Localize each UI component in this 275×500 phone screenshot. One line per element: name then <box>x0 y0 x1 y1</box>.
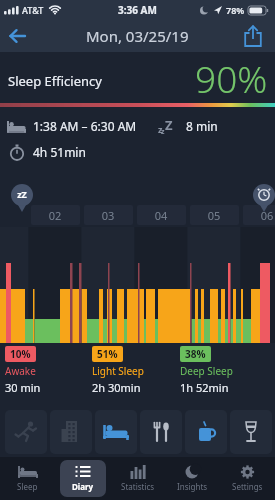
button[interactable] <box>140 410 182 454</box>
button[interactable]: Diary <box>55 457 110 500</box>
staticText: AT&T <box>22 4 44 16</box>
staticText: 1h 52min <box>180 380 229 395</box>
staticText: 30 min <box>5 380 41 395</box>
staticText: 02 <box>40 208 70 223</box>
staticText: z <box>158 123 163 135</box>
staticText: Z <box>165 116 173 134</box>
staticText: Sleep Efficiency <box>8 72 102 90</box>
button[interactable] <box>230 410 272 454</box>
staticText: 3:36 AM <box>118 3 157 17</box>
staticText: 05 <box>199 208 229 223</box>
staticText: Awake <box>5 364 36 378</box>
button[interactable] <box>239 20 267 52</box>
button[interactable] <box>50 410 92 454</box>
button[interactable]: Statistics <box>110 457 165 500</box>
button[interactable] <box>185 410 227 454</box>
button[interactable]: Insights <box>165 457 220 500</box>
staticText: 38% <box>185 347 206 361</box>
staticText: 90% <box>195 53 268 103</box>
staticText: 4h 51min <box>33 144 86 160</box>
staticText: Deep Sleep <box>180 364 233 378</box>
staticText: 04 <box>146 208 176 223</box>
staticText: 03 <box>93 208 123 223</box>
staticText: Diary <box>72 481 94 492</box>
staticText: Statistics <box>121 481 155 492</box>
staticText: 8 min <box>186 118 218 134</box>
staticText: Light Sleep <box>92 364 144 378</box>
staticText: z <box>161 127 165 137</box>
staticText: 1:38 AM – 6:30 AM <box>33 118 137 134</box>
staticText: 06 <box>252 208 275 223</box>
staticText: 51% <box>97 347 118 361</box>
button[interactable] <box>5 410 47 454</box>
staticText: Settings <box>232 481 263 492</box>
button[interactable]: Sleep <box>0 457 55 500</box>
button[interactable]: Settings <box>220 457 275 500</box>
staticText: Sleep <box>17 481 38 492</box>
staticText: zZ <box>13 188 31 200</box>
staticText: Mon, 03/25/19 <box>86 26 189 46</box>
button[interactable] <box>95 410 137 454</box>
staticText: 2h 30min <box>92 380 141 395</box>
button[interactable] <box>0 20 34 52</box>
staticText: 10% <box>10 347 31 361</box>
staticText: 78% <box>226 4 245 16</box>
staticText: Insights <box>177 481 208 492</box>
